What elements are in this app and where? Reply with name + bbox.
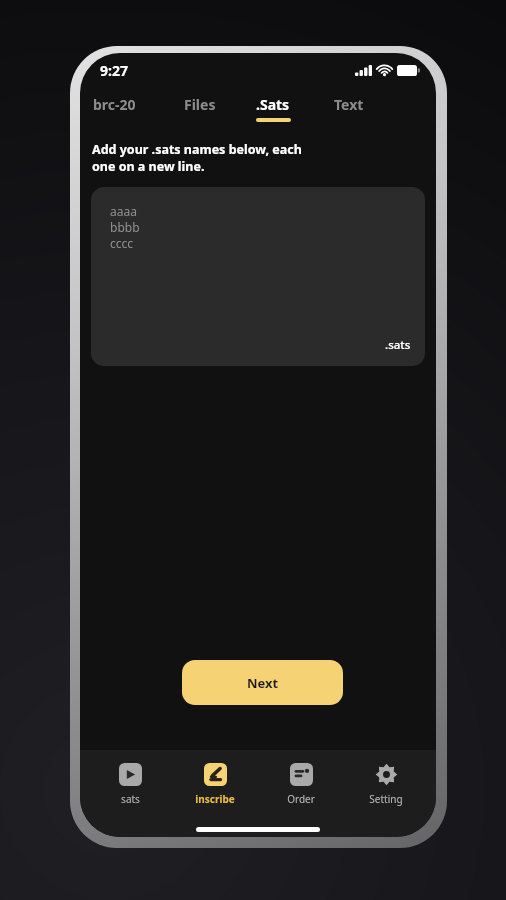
button[interactable]: Order [266,761,336,808]
button[interactable]: sats [95,761,165,808]
staticText: brc-20 [93,95,136,114]
staticText: inscribe [195,792,235,806]
staticText: aaaa [110,203,137,219]
staticText: bbbb [110,219,140,235]
staticText: .Sats [256,95,290,114]
staticText: Next [247,674,279,692]
button[interactable]: Text [334,95,423,114]
staticText: Text [334,95,364,114]
staticText: cccc [110,235,134,251]
button[interactable]: Files [184,95,256,114]
staticText: Add your .sats names below, each one on … [92,141,302,175]
button[interactable]: aaaa [91,187,425,366]
button[interactable]: Setting [351,761,421,808]
button[interactable]: Next [182,660,343,705]
staticText: Order [287,792,315,806]
staticText: Setting [369,792,403,806]
button[interactable]: brc-20 [93,95,184,114]
staticText: Files [184,95,216,114]
staticText: .sats [385,337,411,353]
button[interactable]: .Sats [256,95,334,122]
button[interactable]: inscribe [180,761,250,808]
staticText: 9:27 [100,61,128,80]
staticText: sats [121,792,140,806]
